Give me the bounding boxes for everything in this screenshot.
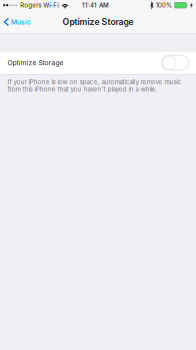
button[interactable]: Music xyxy=(0,10,57,33)
staticText: 100% xyxy=(156,1,172,9)
staticText: Rogers Wi-Fi xyxy=(20,1,58,9)
staticText: Optimize Storage xyxy=(62,17,133,27)
button[interactable]: Optimize Storage xyxy=(0,51,196,74)
staticText: Music xyxy=(11,18,31,26)
staticText: Optimize Storage xyxy=(7,59,63,67)
button[interactable]: Optimize Storage, off xyxy=(162,55,189,70)
staticText: If your iPhone is low on space, automati… xyxy=(7,78,181,93)
staticText: 11:41 AM xyxy=(82,1,109,9)
